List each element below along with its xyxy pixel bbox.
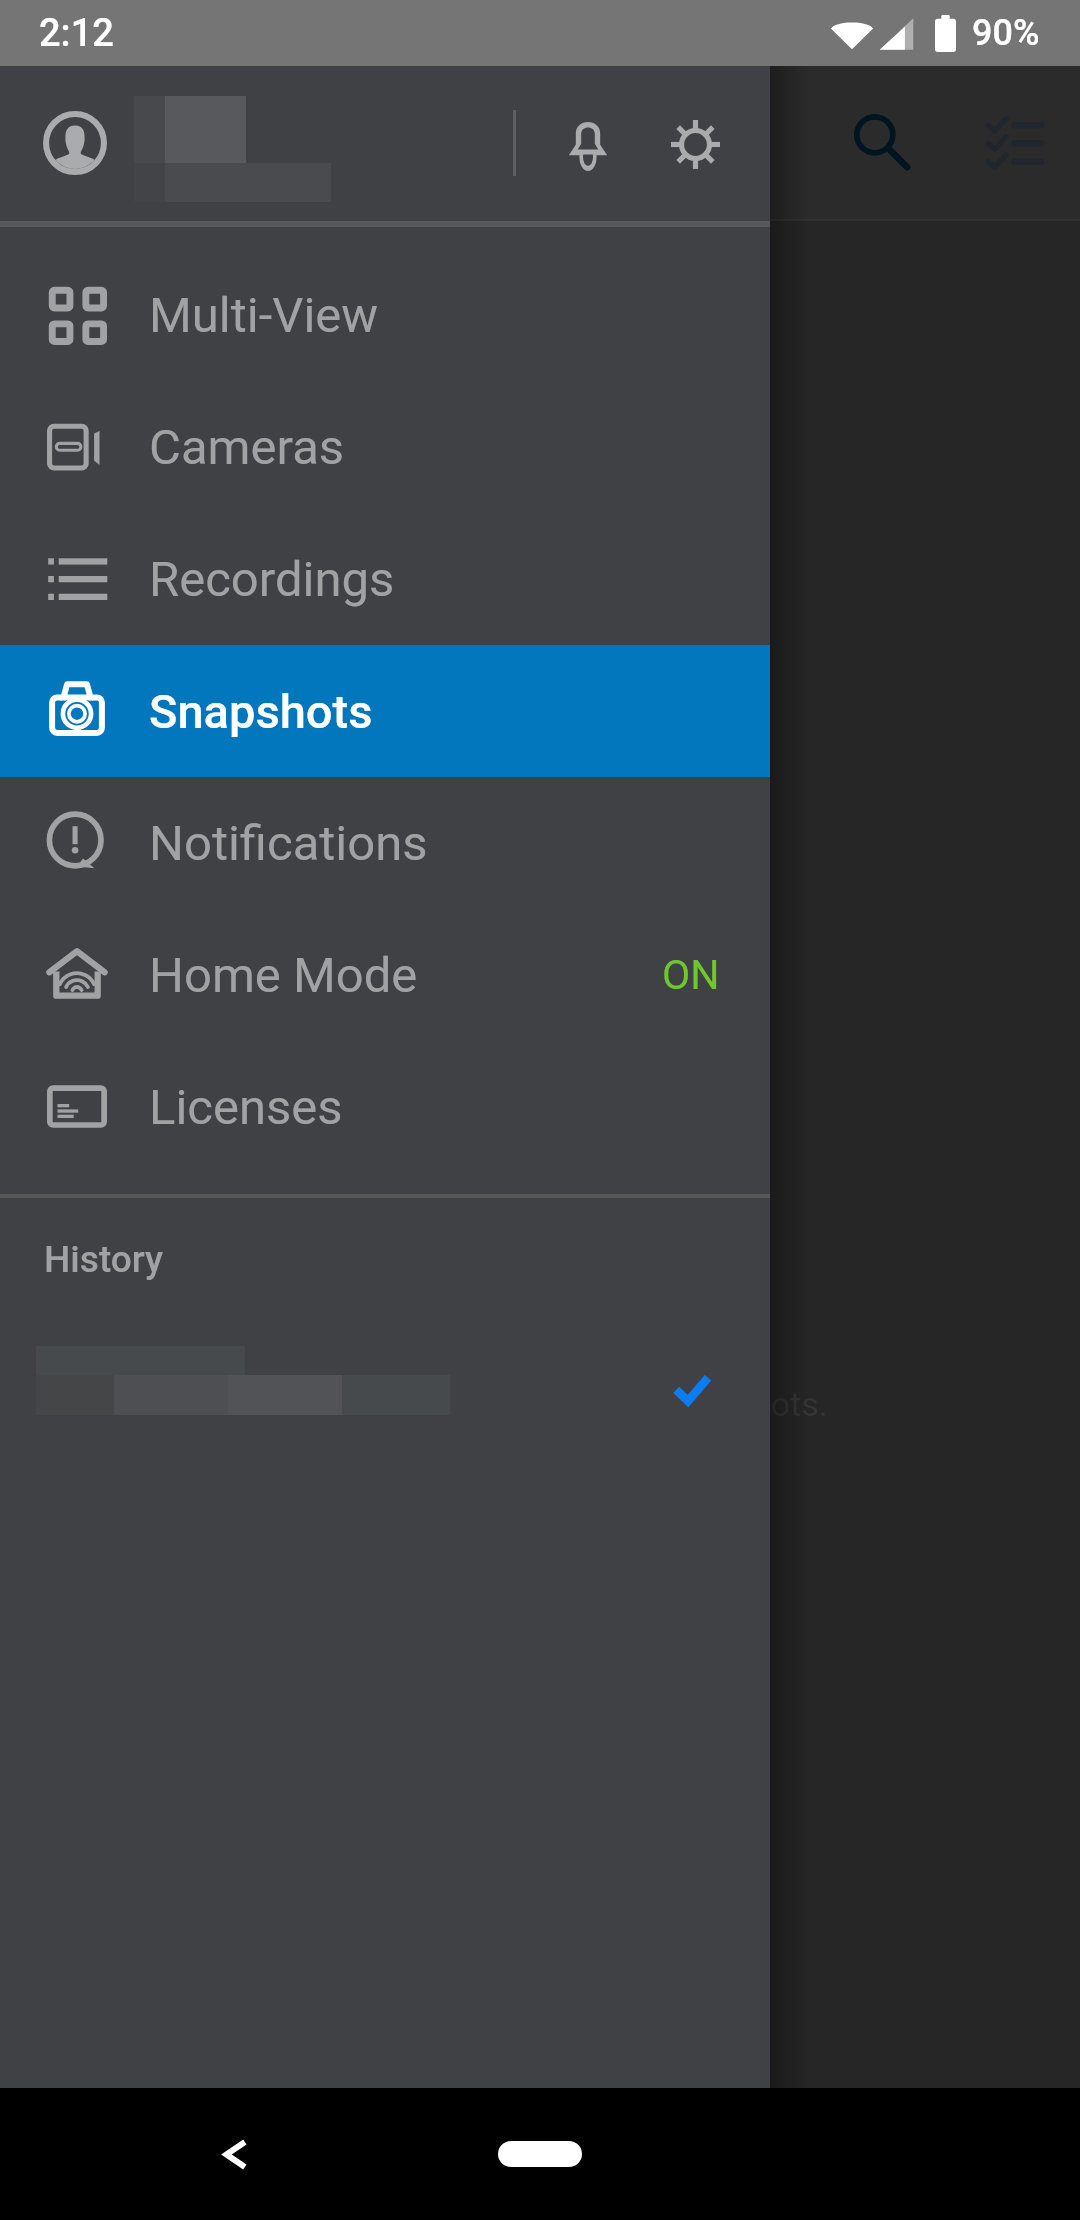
staticText: Recordings bbox=[149, 551, 395, 608]
staticText: History bbox=[44, 1238, 164, 1281]
staticText: Home Mode bbox=[149, 947, 418, 1004]
button[interactable]: Home bbox=[498, 2141, 582, 2167]
button[interactable]: Notifications bbox=[0, 777, 770, 909]
staticText: There are no snapshots. bbox=[463, 1384, 828, 1424]
button[interactable]: Notifications bbox=[0, 66, 770, 221]
button[interactable]: Settings bbox=[641, 90, 749, 198]
button[interactable]: Recordings bbox=[0, 513, 770, 645]
button[interactable]: Search bbox=[816, 76, 948, 208]
button[interactable]: Home Mode bbox=[0, 909, 770, 1041]
staticText: Cameras bbox=[149, 419, 345, 476]
button[interactable]: Back bbox=[180, 2099, 290, 2209]
button[interactable]: Notifications bbox=[534, 90, 642, 198]
staticText: Multi-View bbox=[149, 287, 379, 344]
staticText: 2:12 bbox=[39, 11, 114, 56]
staticText: Licenses bbox=[149, 1079, 343, 1136]
staticText: ON bbox=[662, 951, 720, 999]
staticText: Notifications bbox=[149, 815, 428, 872]
button[interactable]: Snapshots bbox=[0, 645, 770, 777]
button[interactable] bbox=[0, 1331, 770, 1443]
button[interactable]: Multi-View bbox=[0, 249, 770, 381]
staticText: 90% bbox=[972, 12, 1040, 54]
button[interactable]: Licenses bbox=[0, 1041, 770, 1173]
staticText: Snapshots bbox=[149, 684, 373, 739]
button[interactable]: Cameras bbox=[0, 381, 770, 513]
